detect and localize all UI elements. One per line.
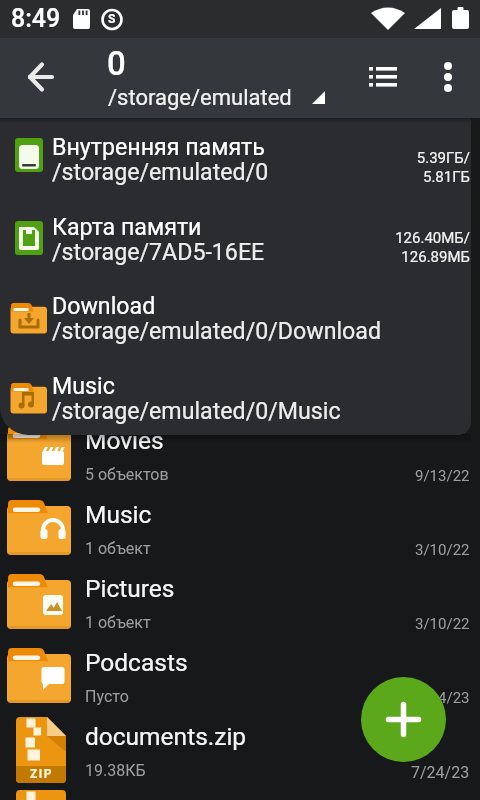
button[interactable]: Podcasts xyxy=(0,642,480,716)
staticText: Pictures xyxy=(85,574,175,603)
staticText: 7/24/23 xyxy=(411,763,470,782)
staticText: /storage/emulated/0/Download xyxy=(52,317,382,344)
staticText: 5.39ГБ/ 5.81ГБ xyxy=(416,149,470,185)
button[interactable]: Music xyxy=(0,494,480,568)
staticText: documents.zip xyxy=(85,722,247,751)
staticText: Download xyxy=(52,292,156,319)
staticText: 19.38КБ xyxy=(85,761,146,780)
staticText: 3/10/22 xyxy=(415,615,470,633)
staticText: 5 объектов xyxy=(85,465,169,484)
staticText: /storage/7AD5-16EE xyxy=(52,238,265,265)
button[interactable] xyxy=(361,677,446,762)
staticText: 1 объект xyxy=(85,613,151,632)
button[interactable] xyxy=(424,53,472,101)
button[interactable] xyxy=(359,53,407,101)
button[interactable]: Карта памяти xyxy=(0,198,471,277)
staticText: 8:49 xyxy=(11,4,61,33)
button[interactable]: Внутренняя память xyxy=(0,118,471,197)
staticText: ZIP xyxy=(30,767,54,781)
staticText: 0 xyxy=(107,44,126,83)
staticText: Podcasts xyxy=(85,648,188,677)
staticText: Пусто xyxy=(85,687,129,706)
staticText: 126.40МБ/ 126.89МБ xyxy=(395,229,470,265)
staticText: 7/24/23 xyxy=(415,689,470,707)
staticText: S xyxy=(108,12,116,26)
button[interactable]: ZIP xyxy=(0,716,480,790)
staticText: 1 объект xyxy=(85,539,151,558)
button[interactable]: Pictures xyxy=(0,568,480,642)
staticText: 9/13/22 xyxy=(415,467,470,485)
staticText: Movies xyxy=(85,426,164,455)
button[interactable]: /storage/emulated xyxy=(108,85,327,111)
staticText: /storage/emulated/0/Music xyxy=(52,397,341,424)
staticText: Music xyxy=(85,500,152,529)
staticText: Music xyxy=(52,372,115,399)
button[interactable] xyxy=(22,53,70,101)
button[interactable]: Music xyxy=(0,357,471,435)
button[interactable]: Download xyxy=(0,277,471,356)
staticText: Внутренняя память xyxy=(52,133,265,160)
staticText: 3/10/22 xyxy=(415,541,470,559)
staticText: /storage/emulated xyxy=(108,85,292,111)
button[interactable]: Movies xyxy=(0,420,480,494)
staticText: /storage/emulated/0 xyxy=(52,158,269,185)
staticText: Карта памяти xyxy=(52,213,202,240)
